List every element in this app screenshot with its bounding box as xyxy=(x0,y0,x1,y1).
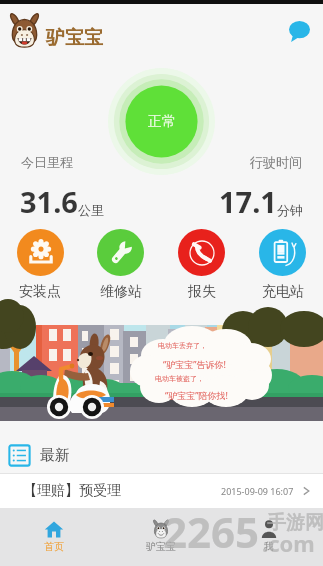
button[interactable]: 【理赔】预受理 xyxy=(0,474,323,508)
staticText: 2265 xyxy=(163,503,260,560)
staticText: 31.6 xyxy=(20,182,78,221)
staticText: 首页 xyxy=(44,540,64,553)
button[interactable]: 我 xyxy=(215,508,323,566)
button[interactable]: Messages xyxy=(284,16,314,46)
staticText: 公里 xyxy=(78,202,104,218)
button[interactable]: 电动车丢弃了， xyxy=(0,325,323,421)
staticText: 17.1 xyxy=(219,182,277,221)
staticText: 报失 xyxy=(188,283,216,299)
staticText: 正常 xyxy=(148,113,176,131)
staticText: 最新 xyxy=(40,446,70,465)
button[interactable]: 最新 xyxy=(8,438,323,472)
staticText: 行驶时间 xyxy=(250,154,302,170)
staticText: 电动车丢弃了， xyxy=(158,341,207,350)
button[interactable]: 驴宝宝 xyxy=(107,508,215,566)
staticText: “驴宝宝”告诉你! xyxy=(163,358,226,370)
button[interactable]: 正常 xyxy=(108,68,215,175)
staticText: 驴宝宝 xyxy=(46,26,103,50)
staticText: 【理赔】预受理 xyxy=(23,482,121,500)
staticText: 今日里程 xyxy=(21,154,73,170)
button[interactable]: 报失 xyxy=(161,229,242,299)
staticText: 我 xyxy=(264,540,274,553)
button[interactable]: 驴宝宝 xyxy=(6,12,103,49)
staticText: 电动车被盗了， xyxy=(155,374,204,383)
staticText: 充电站 xyxy=(262,283,304,299)
staticText: 维修站 xyxy=(100,283,142,299)
staticText: 驴宝宝 xyxy=(146,540,176,553)
staticText: 手游网 xyxy=(267,511,323,535)
button[interactable]: 首页 xyxy=(0,508,107,566)
button[interactable]: 充电站 xyxy=(242,229,323,299)
staticText: .com xyxy=(262,528,315,558)
staticText: “驴宝宝”陪你找! xyxy=(165,389,228,401)
button[interactable]: 维修站 xyxy=(80,229,161,299)
staticText: 安装点 xyxy=(19,283,61,299)
staticText: 分钟 xyxy=(277,202,303,218)
button[interactable]: 安装点 xyxy=(0,229,80,299)
staticText: 2015-09-09 16:07 xyxy=(221,485,294,497)
